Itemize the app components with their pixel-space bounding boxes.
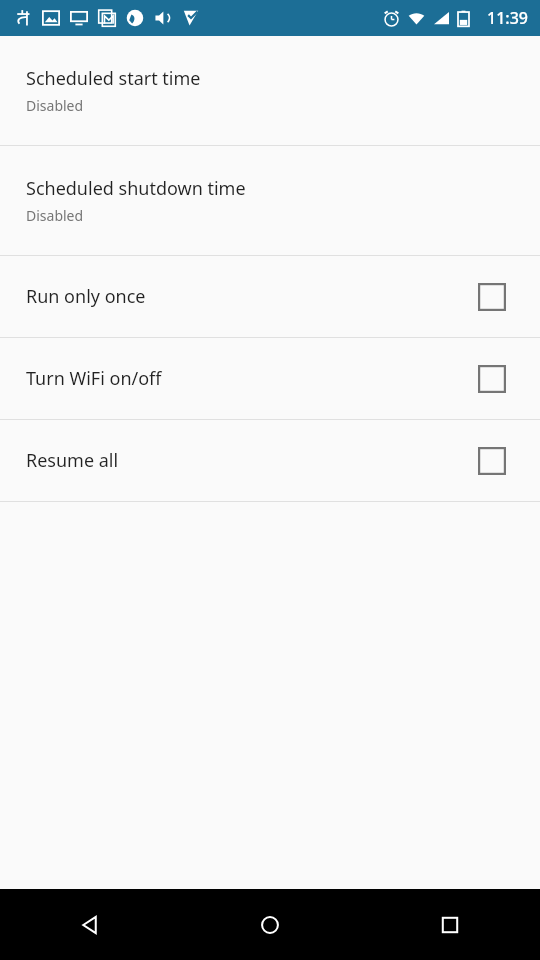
other: Checkbox, unchecked xyxy=(478,447,506,475)
button[interactable]: Recent apps xyxy=(360,889,540,960)
button[interactable]: Turn WiFi on/off xyxy=(0,338,540,419)
button[interactable]: Scheduled start time xyxy=(0,36,540,145)
button[interactable]: Run only once xyxy=(0,256,540,337)
staticText: 11:39 xyxy=(487,7,528,29)
button[interactable]: Home xyxy=(180,889,360,960)
other: Checkbox, unchecked xyxy=(478,365,506,393)
other: Checkbox, unchecked xyxy=(478,283,506,311)
button[interactable]: Resume all xyxy=(0,420,540,501)
button[interactable]: Scheduled shutdown time xyxy=(0,146,540,255)
staticText: Scheduled shutdown time xyxy=(26,176,246,201)
staticText: Disabled xyxy=(26,96,84,115)
staticText: Turn WiFi on/off xyxy=(26,366,478,391)
staticText: Run only once xyxy=(26,284,478,309)
staticText: Disabled xyxy=(26,206,84,225)
button[interactable]: Back xyxy=(0,889,180,960)
staticText: Scheduled start time xyxy=(26,66,201,91)
staticText: Resume all xyxy=(26,448,478,473)
